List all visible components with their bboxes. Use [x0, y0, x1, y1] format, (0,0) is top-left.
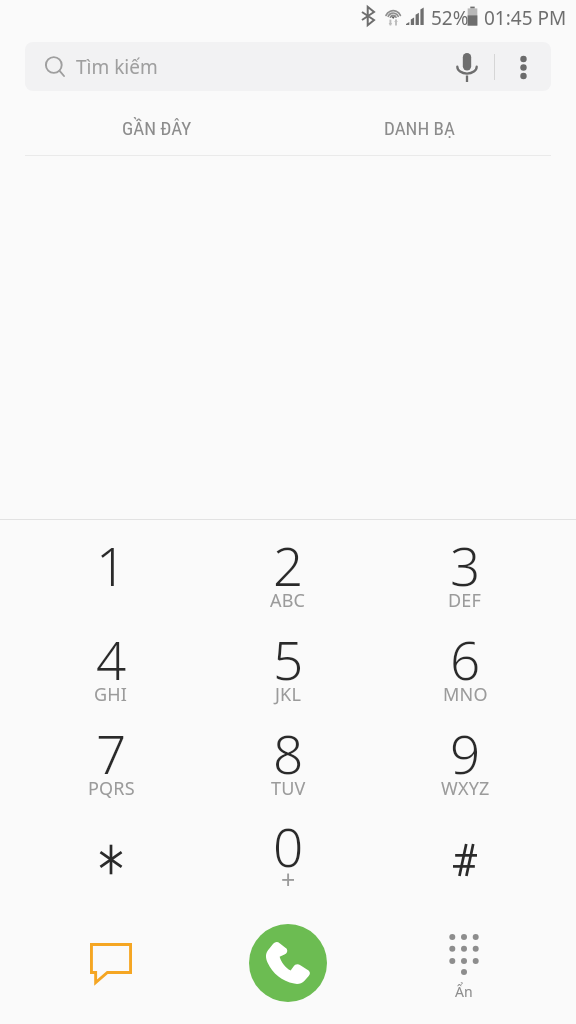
button[interactable]: 2 — [200, 523, 376, 617]
button[interactable]: 0 — [200, 804, 376, 898]
button[interactable]: DANH BẠ — [288, 103, 551, 153]
staticText: 52% — [431, 5, 469, 31]
staticText: Tìm kiếm — [76, 54, 158, 80]
button[interactable]: 6 — [377, 617, 553, 711]
staticText: + — [281, 862, 296, 896]
staticText: GHI — [94, 682, 128, 707]
staticText: 9 — [450, 717, 481, 789]
staticText: MNO — [443, 682, 488, 707]
staticText: 01:45 PM — [484, 5, 567, 31]
button[interactable]: Voice search — [447, 47, 487, 87]
staticText: JKL — [275, 682, 302, 707]
staticText: DANH BẠ — [384, 117, 455, 139]
staticText: 8 — [273, 717, 304, 789]
button[interactable]: Call — [249, 924, 327, 1002]
staticText: Ẩn — [455, 982, 473, 1001]
button[interactable]: 7 — [23, 711, 199, 805]
staticText: 0 — [273, 810, 304, 882]
button[interactable]: Hide keypad — [424, 920, 504, 1008]
button[interactable]: Send message — [71, 924, 151, 1004]
button[interactable]: 1 — [23, 523, 199, 617]
staticText: 1 — [96, 529, 127, 601]
button[interactable] — [377, 804, 553, 898]
staticText: 5 — [273, 623, 304, 695]
button[interactable]: 5 — [200, 617, 376, 711]
button[interactable]: More options — [503, 47, 543, 87]
button[interactable]: 8 — [200, 711, 376, 805]
staticText: WXYZ — [441, 776, 490, 801]
staticText: TUV — [271, 776, 306, 801]
staticText: PQRS — [88, 776, 135, 801]
button[interactable]: 3 — [377, 523, 553, 617]
staticText: 6 — [450, 623, 481, 695]
staticText: ABC — [270, 588, 306, 613]
staticText: GẦN ĐÂY — [122, 117, 192, 139]
staticText: DEF — [448, 588, 482, 613]
button[interactable]: GẦN ĐÂY — [25, 103, 288, 153]
button[interactable]: 4 — [23, 617, 199, 711]
button[interactable]: 9 — [377, 711, 553, 805]
staticText: 4 — [96, 623, 127, 695]
button[interactable]: Tìm kiếm — [25, 42, 551, 91]
staticText: 3 — [450, 529, 481, 601]
staticText: 7 — [96, 717, 127, 789]
button[interactable] — [23, 804, 199, 898]
staticText: 2 — [273, 529, 304, 601]
